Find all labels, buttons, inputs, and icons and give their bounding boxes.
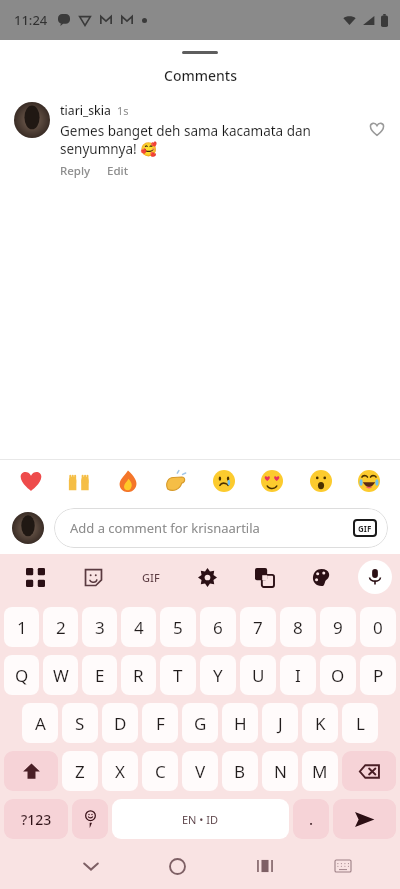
staticText: X	[115, 760, 125, 783]
button[interactable]: Emoji reaction	[257, 466, 287, 496]
button[interactable]: 8	[280, 607, 316, 647]
button[interactable]: M	[302, 751, 338, 791]
staticText: 0	[373, 616, 383, 639]
button[interactable]: N	[262, 751, 298, 791]
button[interactable]: C	[142, 751, 178, 791]
button[interactable]: Emoji reaction	[16, 466, 46, 496]
staticText: 8	[293, 616, 303, 639]
staticText: Comments	[164, 66, 237, 85]
button[interactable]: E	[82, 655, 117, 695]
button[interactable]: G	[182, 703, 218, 743]
staticText: U	[252, 664, 265, 687]
button[interactable]: 9	[320, 607, 356, 647]
button[interactable]: F	[142, 703, 178, 743]
button[interactable]: 4	[121, 607, 156, 647]
button[interactable]: GIF	[122, 554, 179, 600]
staticText: 6	[213, 616, 223, 639]
button[interactable]: X	[102, 751, 138, 791]
button[interactable]: Emoji reaction	[354, 466, 384, 496]
staticText: L	[356, 712, 365, 735]
staticText: J	[278, 712, 283, 735]
staticText: 3	[95, 616, 105, 639]
staticText: GIF	[358, 523, 372, 534]
button[interactable]: Voice input	[358, 560, 392, 594]
button[interactable]: Y	[200, 655, 236, 695]
button[interactable]: O	[320, 655, 356, 695]
staticText: GIF	[142, 570, 160, 585]
staticText: E	[95, 664, 105, 687]
button[interactable]: Translate	[236, 554, 293, 600]
button[interactable]: Emoji reaction	[113, 466, 143, 496]
staticText: 1	[17, 616, 27, 639]
button[interactable]: ?123	[4, 799, 68, 839]
button[interactable]: 3	[82, 607, 117, 647]
button[interactable]: 7	[240, 607, 276, 647]
staticText: M	[312, 760, 328, 783]
button[interactable]: Backspace	[342, 751, 396, 791]
button[interactable]: 1	[4, 607, 39, 647]
button[interactable]: J	[262, 703, 298, 743]
button[interactable]: Edit	[107, 163, 129, 179]
button[interactable]: 0	[360, 607, 396, 647]
button[interactable]: Z	[62, 751, 98, 791]
button[interactable]: Stickers	[64, 554, 122, 600]
button[interactable]: U	[240, 655, 276, 695]
button[interactable]: Switch keyboard	[308, 843, 378, 889]
staticText: R	[133, 664, 144, 687]
button[interactable]: Like comment	[364, 116, 390, 142]
button[interactable]: Your profile	[12, 512, 44, 544]
button[interactable]: 2	[43, 607, 78, 647]
button[interactable]: Emoji reaction	[161, 466, 191, 496]
button[interactable]: .	[293, 799, 329, 839]
button[interactable]: B	[222, 751, 258, 791]
staticText: Q	[15, 664, 29, 687]
staticText: ?123	[21, 810, 52, 829]
staticText: W	[53, 664, 69, 687]
button[interactable]: GIF	[352, 518, 378, 538]
button[interactable]: V	[182, 751, 218, 791]
button[interactable]: EN • ID	[112, 799, 289, 839]
staticText: D	[114, 712, 127, 735]
staticText: I	[295, 664, 301, 687]
staticText: 2	[56, 616, 66, 639]
button[interactable]: Home	[134, 843, 221, 889]
button[interactable]: Emoji reaction	[64, 466, 94, 496]
button[interactable]: Hide keyboard	[47, 843, 134, 889]
button[interactable]: Apps	[6, 554, 64, 600]
button[interactable]: Add a comment for krisnaartila	[54, 508, 388, 548]
button[interactable]: Send	[333, 799, 396, 839]
button[interactable]: Emoji reaction	[209, 466, 239, 496]
button[interactable]: Emoji reaction	[306, 466, 336, 496]
button[interactable]: Q	[4, 655, 39, 695]
staticText: N	[274, 760, 287, 783]
button[interactable]: Reply	[60, 163, 91, 179]
button[interactable]: I	[280, 655, 316, 695]
button[interactable]: A	[22, 703, 58, 743]
button[interactable]: 5	[160, 607, 196, 647]
button[interactable]: tiari_skia	[0, 96, 400, 179]
button[interactable]: W	[43, 655, 78, 695]
button[interactable]: 6	[200, 607, 236, 647]
button[interactable]: Settings	[179, 554, 236, 600]
button[interactable]: K	[302, 703, 338, 743]
staticText: O	[331, 664, 345, 687]
staticText: 1s	[117, 103, 129, 118]
staticText: C	[155, 760, 166, 783]
staticText: P	[373, 664, 384, 687]
button[interactable]: Emoji	[72, 799, 108, 839]
button[interactable]: L	[342, 703, 378, 743]
staticText: Add a comment for krisnaartila	[70, 519, 352, 537]
button[interactable]: P	[360, 655, 396, 695]
button[interactable]: S	[62, 703, 98, 743]
button[interactable]: Recents	[221, 843, 308, 889]
button[interactable]: Shift	[4, 751, 58, 791]
button[interactable]: T	[160, 655, 196, 695]
button[interactable]: H	[222, 703, 258, 743]
staticText: V	[195, 760, 206, 783]
button[interactable]: Theme	[293, 554, 350, 600]
staticText: F	[156, 712, 165, 735]
button[interactable]: D	[102, 703, 138, 743]
staticText: 4	[134, 616, 144, 639]
button[interactable]: R	[121, 655, 156, 695]
staticText: Z	[75, 760, 85, 783]
